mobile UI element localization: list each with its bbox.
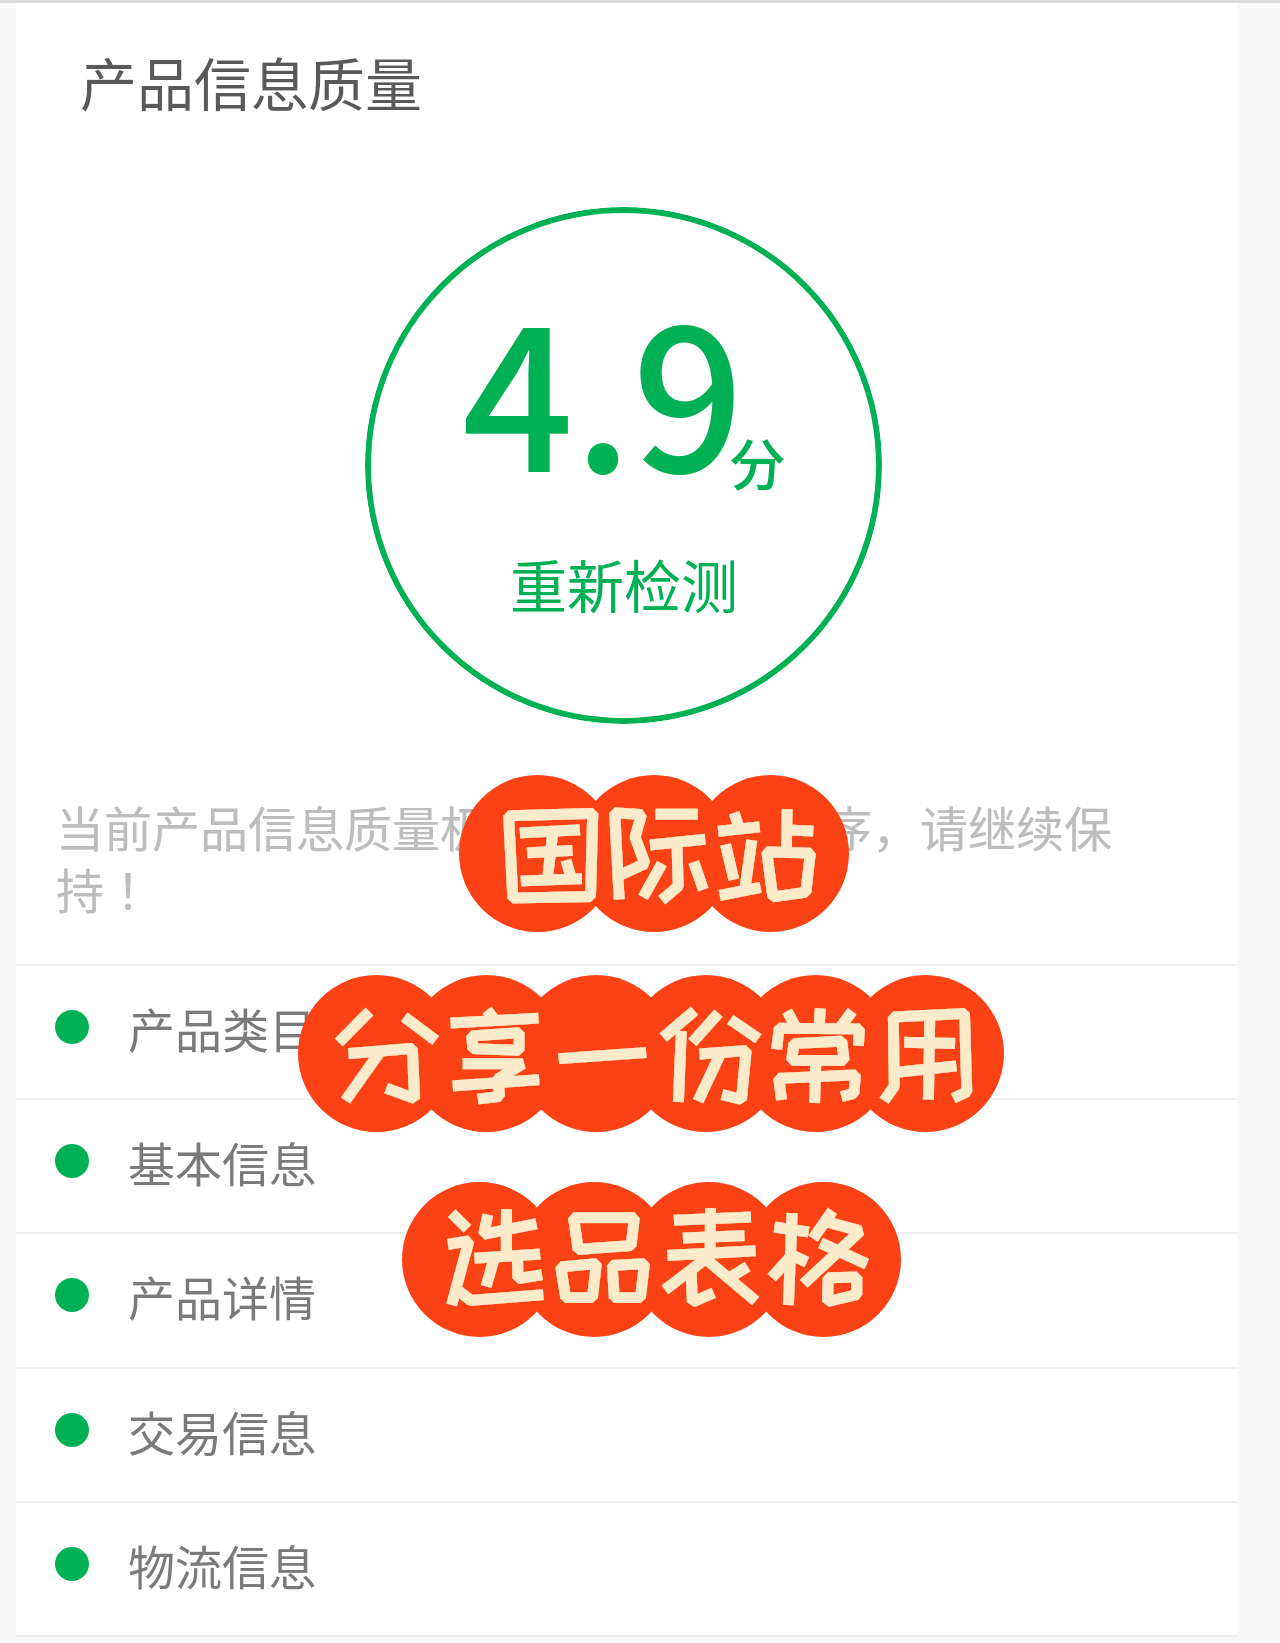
button[interactable]: 物流信息 — [16, 1501, 1238, 1635]
staticText: 分享一份常用 — [334, 996, 981, 1111]
staticText: 选品表格 — [442, 1198, 874, 1313]
staticText: 物流信息 — [128, 1530, 316, 1598]
staticText: 产品信息质量 — [80, 40, 422, 123]
staticText: 基本信息 — [128, 1127, 316, 1195]
staticText: 4.9 — [462, 245, 744, 529]
button[interactable]: 重新检测 — [365, 207, 882, 724]
button[interactable]: 产品详情 — [16, 1232, 1238, 1366]
staticText: 产品详情 — [128, 1261, 316, 1329]
staticText: 国际站 — [498, 796, 822, 911]
button[interactable]: 基本信息 — [16, 1098, 1238, 1232]
staticText: 分 — [730, 421, 786, 501]
staticText: 当前产品信息质量极好，名列同行前序，请继续保持！ — [56, 791, 1138, 922]
staticText: 重新检测 — [510, 542, 738, 625]
staticText: 交易信息 — [128, 1396, 316, 1464]
staticText: 产品类目 — [128, 993, 316, 1061]
button[interactable]: 交易信息 — [16, 1367, 1238, 1501]
button[interactable]: 产品类目 — [16, 964, 1238, 1098]
